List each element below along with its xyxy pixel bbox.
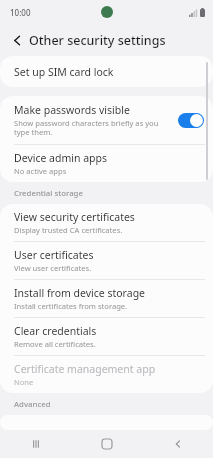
staticText: Make passwords visible [14,103,130,117]
staticText: Install certificates from storage. [14,301,128,311]
staticText: Certificate management app [14,362,156,376]
button[interactable]: User certificates [0,242,213,279]
staticText: Remove all certificates. [14,339,96,349]
button[interactable]: Recent apps [0,430,71,458]
staticText: Install from device storage [14,286,146,300]
staticText: 10:00 [10,7,31,18]
staticText: Credential storage [14,188,83,199]
button[interactable]: Home [71,430,142,458]
button[interactable]: Device admin apps [0,145,213,182]
staticText: Set up SIM card lock [14,65,114,79]
button[interactable]: Back [142,430,213,458]
button[interactable]: Back [8,31,26,49]
button[interactable]: Certificate management app [0,356,213,393]
button[interactable]: Clear credentials [0,318,213,355]
staticText: User certificates [14,248,94,262]
staticText: Clear credentials [14,324,97,338]
staticText: None [14,377,34,387]
staticText: View security certificates [14,210,135,224]
button[interactable]: Make passwords visible [0,96,213,144]
button[interactable]: Set up SIM card lock [0,56,213,87]
staticText: Show password characters briefly as you … [14,118,172,138]
staticText: Display trusted CA certificates. [14,225,123,235]
staticText: Other security settings [29,32,166,49]
staticText: View user certificates. [14,263,92,273]
staticText: Device admin apps [14,151,108,165]
button[interactable]: View security certificates [0,204,213,241]
staticText: No active apps [14,166,67,176]
button[interactable]: Make passwords visible toggle [178,113,204,128]
button[interactable]: Install from device storage [0,280,213,317]
staticText: Advanced [14,399,51,410]
